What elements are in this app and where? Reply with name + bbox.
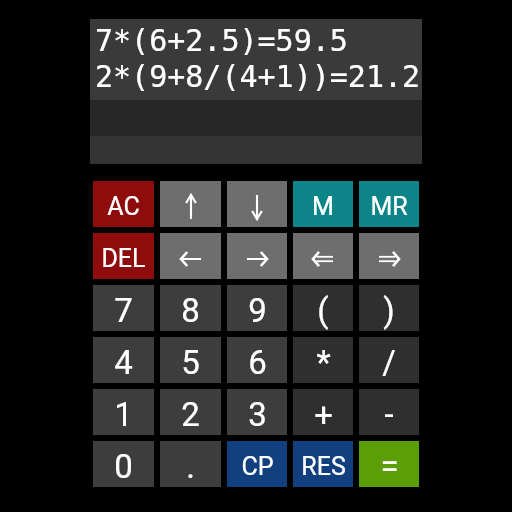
- button[interactable]: 5: [160, 337, 221, 383]
- button[interactable]: 8: [160, 285, 221, 331]
- button[interactable]: M: [293, 181, 353, 227]
- button[interactable]: =: [359, 441, 419, 487]
- button[interactable]: 0: [93, 441, 154, 487]
- button[interactable]: RES: [293, 441, 353, 487]
- staticText: 7*(6+2.5)=59.5 2*(9+8/(4+1))=21.2: [95, 23, 421, 94]
- staticText: 9: [248, 291, 267, 330]
- button[interactable]: 6: [227, 337, 287, 383]
- button[interactable]: (: [293, 285, 353, 331]
- staticText: 6: [248, 343, 267, 382]
- button[interactable]: MR: [359, 181, 419, 227]
- staticText: =: [380, 447, 399, 486]
- staticText: (: [317, 291, 329, 330]
- button[interactable]: [160, 181, 221, 227]
- staticText: 7: [114, 291, 133, 330]
- staticText: 2: [181, 395, 200, 434]
- button[interactable]: AC: [93, 181, 154, 227]
- button[interactable]: 9: [227, 285, 287, 331]
- button[interactable]: [160, 233, 221, 279]
- button[interactable]: /: [359, 337, 419, 383]
- staticText: .: [186, 447, 195, 486]
- button[interactable]: +: [293, 389, 353, 435]
- staticText: M: [312, 192, 334, 221]
- staticText: 1: [114, 395, 133, 434]
- button[interactable]: ): [359, 285, 419, 331]
- button[interactable]: 3: [227, 389, 287, 435]
- button[interactable]: 7: [93, 285, 154, 331]
- staticText: /: [382, 343, 396, 382]
- button[interactable]: CP: [227, 441, 287, 487]
- button[interactable]: [227, 181, 287, 227]
- button[interactable]: .: [160, 441, 221, 487]
- staticText: ): [383, 291, 395, 330]
- staticText: 3: [248, 395, 267, 434]
- staticText: MR: [370, 192, 408, 221]
- staticText: 4: [114, 343, 133, 382]
- staticText: AC: [107, 192, 140, 221]
- staticText: 8: [181, 291, 200, 330]
- button[interactable]: -: [359, 389, 419, 435]
- staticText: 0: [114, 447, 133, 486]
- staticText: 5: [181, 343, 200, 382]
- staticText: -: [384, 395, 394, 434]
- staticText: RES: [301, 452, 346, 481]
- button[interactable]: 2: [160, 389, 221, 435]
- button[interactable]: *: [293, 337, 353, 383]
- button[interactable]: 1: [93, 389, 154, 435]
- button[interactable]: DEL: [93, 233, 154, 279]
- staticText: *: [316, 343, 331, 382]
- staticText: +: [314, 395, 333, 434]
- button[interactable]: [359, 233, 419, 279]
- staticText: DEL: [101, 244, 146, 273]
- button[interactable]: [227, 233, 287, 279]
- staticText: CP: [241, 452, 274, 481]
- button[interactable]: [293, 233, 353, 279]
- button[interactable]: 4: [93, 337, 154, 383]
